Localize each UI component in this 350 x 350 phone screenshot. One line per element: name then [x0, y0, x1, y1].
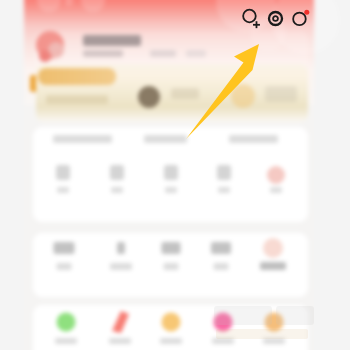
- button[interactable]: Messages: [290, 8, 311, 29]
- button[interactable]: Settings: [265, 8, 286, 29]
- button[interactable]: Add friend: [240, 8, 261, 29]
